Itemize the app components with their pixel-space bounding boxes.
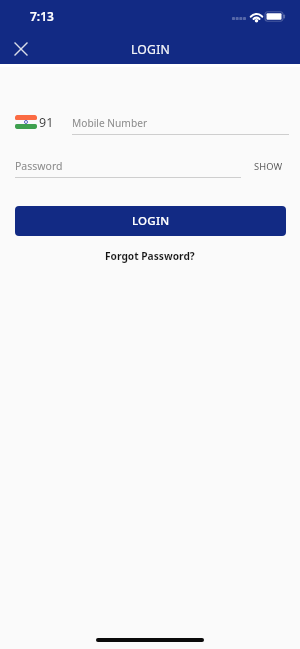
staticText: Password <box>15 159 63 173</box>
button[interactable]: Password <box>13 153 243 179</box>
staticText: Forgot Password? <box>105 249 195 263</box>
staticText: SHOW <box>254 160 283 173</box>
staticText: 7:13 <box>30 8 54 24</box>
button[interactable]: Forgot Password? <box>99 245 201 267</box>
staticText: LOGIN <box>132 213 170 229</box>
button[interactable]: SHOW <box>248 156 289 177</box>
staticText: 91 <box>39 114 54 131</box>
staticText: LOGIN <box>131 41 170 58</box>
button[interactable]: LOGIN <box>15 206 286 236</box>
button[interactable]: Mobile Number <box>70 110 291 136</box>
button[interactable]: Close <box>7 35 34 62</box>
button[interactable]: Select country code <box>11 110 56 134</box>
staticText: Mobile Number <box>72 116 148 130</box>
